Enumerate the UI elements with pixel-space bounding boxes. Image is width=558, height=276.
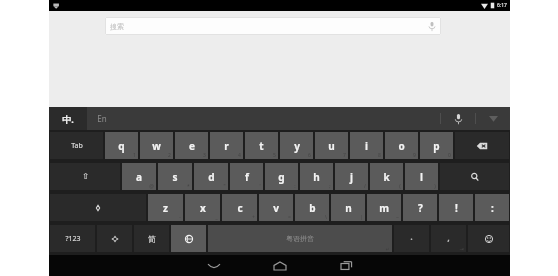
button[interactable]: Recent apps (323, 255, 369, 276)
button[interactable]: j (335, 163, 368, 190)
button[interactable]: r (210, 132, 243, 159)
staticText: + (252, 214, 255, 221)
button[interactable]: 中. (49, 107, 87, 130)
button[interactable]: w (140, 132, 173, 159)
other: Voice search (428, 21, 436, 32)
button[interactable]: Backspace (455, 132, 509, 159)
staticText: ⇥ (459, 246, 464, 252)
button[interactable]: u (315, 132, 348, 159)
button[interactable]: c (222, 194, 257, 221)
button[interactable]: Emoji (468, 225, 509, 252)
staticText: z (163, 201, 168, 215)
button[interactable]: l (405, 163, 438, 190)
staticText: c (237, 201, 243, 215)
button[interactable]: g (265, 163, 298, 190)
staticText: 9 (413, 152, 416, 159)
button[interactable]: v (259, 194, 293, 221)
button[interactable]: o (385, 132, 418, 159)
button[interactable]: En (87, 107, 440, 130)
button[interactable]: q (105, 132, 138, 159)
staticText: y (294, 139, 300, 153)
staticText: ( (399, 183, 401, 190)
button[interactable]: h (300, 163, 333, 190)
staticText: ⇧ (82, 172, 89, 181)
button[interactable]: Voice input (441, 107, 475, 130)
button[interactable]: : (475, 194, 509, 221)
staticText: b (309, 201, 316, 215)
staticText: j (350, 170, 353, 184)
button[interactable]: b (295, 194, 329, 221)
staticText: 6 (308, 152, 311, 159)
button[interactable]: m (367, 194, 401, 221)
button[interactable]: f (230, 163, 263, 190)
button[interactable]: Hide candidates (476, 107, 510, 130)
staticText: 中. (62, 113, 74, 125)
button[interactable]: ⇧ (50, 163, 120, 190)
staticText: d (208, 170, 215, 184)
button[interactable]: ?123 (50, 225, 95, 252)
button[interactable]: s (158, 163, 192, 190)
button[interactable]: p (420, 132, 453, 159)
button[interactable]: Change language (171, 225, 206, 252)
staticText: l (420, 170, 423, 184)
staticText: g (278, 170, 285, 184)
button[interactable]: 搜索 (105, 17, 441, 35)
button[interactable]: n (331, 194, 365, 221)
staticText: a (136, 170, 142, 184)
staticText: q (118, 139, 125, 153)
staticText: \ (325, 214, 327, 221)
button[interactable]: 简 (134, 225, 169, 252)
button[interactable]: ? (403, 194, 437, 221)
button[interactable]: x (185, 194, 220, 221)
staticText: i (365, 139, 368, 153)
button[interactable]: d (194, 163, 228, 190)
staticText: n (345, 201, 352, 215)
button[interactable]: e (175, 132, 208, 159)
button[interactable]: , (431, 225, 466, 252)
button[interactable]: a (122, 163, 156, 190)
staticText: s (172, 170, 178, 184)
button[interactable]: Shift (50, 194, 146, 221)
staticText: . (410, 230, 413, 242)
button[interactable]: . (394, 225, 429, 252)
staticText: u (328, 139, 335, 153)
button[interactable]: Home (257, 255, 303, 276)
staticText: w (152, 139, 161, 153)
staticText: 8 (378, 152, 381, 159)
button[interactable]: Tab (50, 132, 103, 159)
button[interactable]: ! (439, 194, 473, 221)
staticText: o (398, 139, 405, 153)
button[interactable]: Hide keyboard (191, 255, 237, 276)
staticText: m (379, 201, 389, 215)
staticText: x (200, 201, 206, 215)
staticText: 0 (448, 152, 451, 159)
staticText: En (97, 113, 107, 124)
staticText: 1 (133, 152, 136, 159)
staticText: | (360, 214, 363, 221)
staticText: 搜索 (110, 22, 124, 31)
button[interactable]: k (370, 163, 403, 190)
button[interactable]: i (350, 132, 383, 159)
staticText: 粤语拼音 (286, 234, 314, 243)
button[interactable]: t (245, 132, 278, 159)
button[interactable]: Search (440, 163, 509, 190)
staticText: p (433, 139, 440, 153)
button[interactable]: y (280, 132, 313, 159)
staticText: ?123 (65, 234, 81, 244)
button[interactable]: Arrow keys (97, 225, 132, 252)
staticText: : (491, 201, 494, 215)
button[interactable]: 粤语拼音 (208, 225, 392, 252)
staticText: ! (455, 201, 458, 215)
staticText: * (187, 183, 190, 190)
staticText: Tab (71, 141, 83, 151)
button[interactable]: z (148, 194, 183, 221)
staticText: 2 (168, 152, 171, 159)
